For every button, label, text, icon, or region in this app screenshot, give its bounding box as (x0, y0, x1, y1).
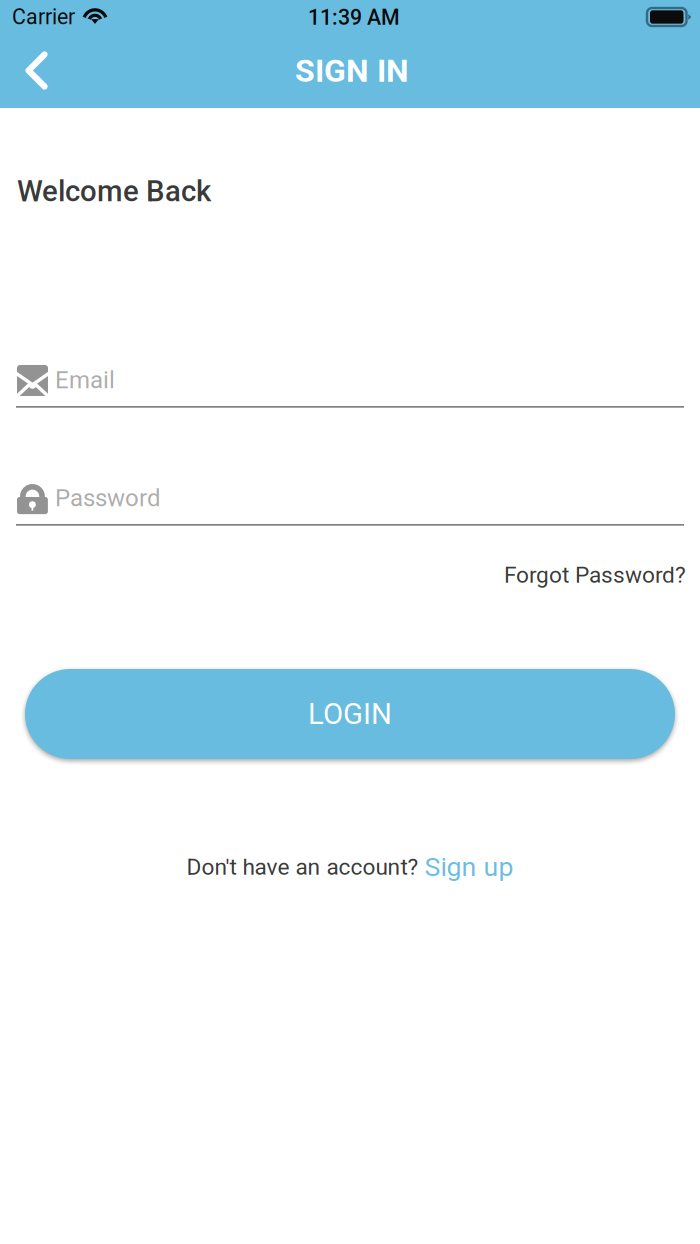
staticText: SIGN IN (295, 52, 409, 89)
staticText: Don't have an account? (186, 854, 418, 880)
staticText: Carrier (12, 4, 75, 29)
staticText: Welcome Back (17, 174, 211, 208)
staticText: LOGIN (308, 697, 392, 731)
staticText: Sign up (424, 851, 513, 883)
staticText: Email (55, 366, 115, 394)
button[interactable]: Sign up (418, 851, 513, 883)
button[interactable]: LOGIN (25, 669, 675, 759)
button[interactable]: Forgot Password? (456, 556, 686, 594)
button[interactable]: Back (0, 37, 76, 105)
staticText: 11:39 AM (308, 5, 400, 30)
staticText: Password (55, 484, 161, 512)
staticText: Forgot Password? (504, 562, 686, 588)
